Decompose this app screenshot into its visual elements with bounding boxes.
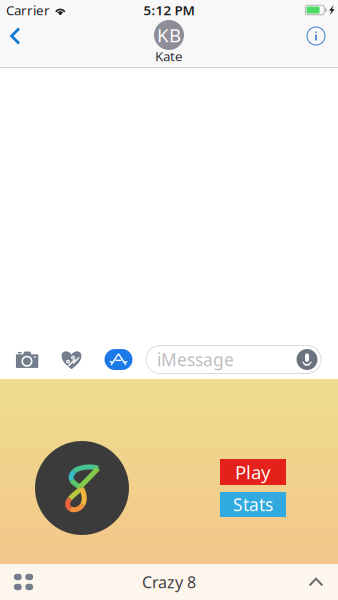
staticText: Crazy 8 (142, 571, 196, 593)
button[interactable]: KB (124, 20, 214, 68)
button[interactable]: Details (290, 20, 338, 68)
staticText: Play (235, 460, 271, 484)
button[interactable]: Play (220, 459, 286, 485)
staticText: Carrier (6, 1, 50, 19)
staticText: Stats (233, 493, 273, 516)
button[interactable]: Camera (0, 340, 50, 379)
button[interactable]: App drawer (0, 564, 47, 600)
button[interactable]: Stats (220, 492, 286, 517)
button[interactable]: Back (0, 20, 37, 68)
button[interactable]: iMessage (146, 345, 321, 373)
button[interactable]: Expand (294, 564, 338, 600)
staticText: 5:12 PM (143, 1, 194, 19)
button[interactable]: Digital Touch (50, 340, 95, 379)
button[interactable]: Apps (95, 340, 146, 379)
staticText: KB (157, 23, 181, 47)
staticText: iMessage (157, 348, 234, 371)
staticText: Kate (155, 47, 183, 65)
